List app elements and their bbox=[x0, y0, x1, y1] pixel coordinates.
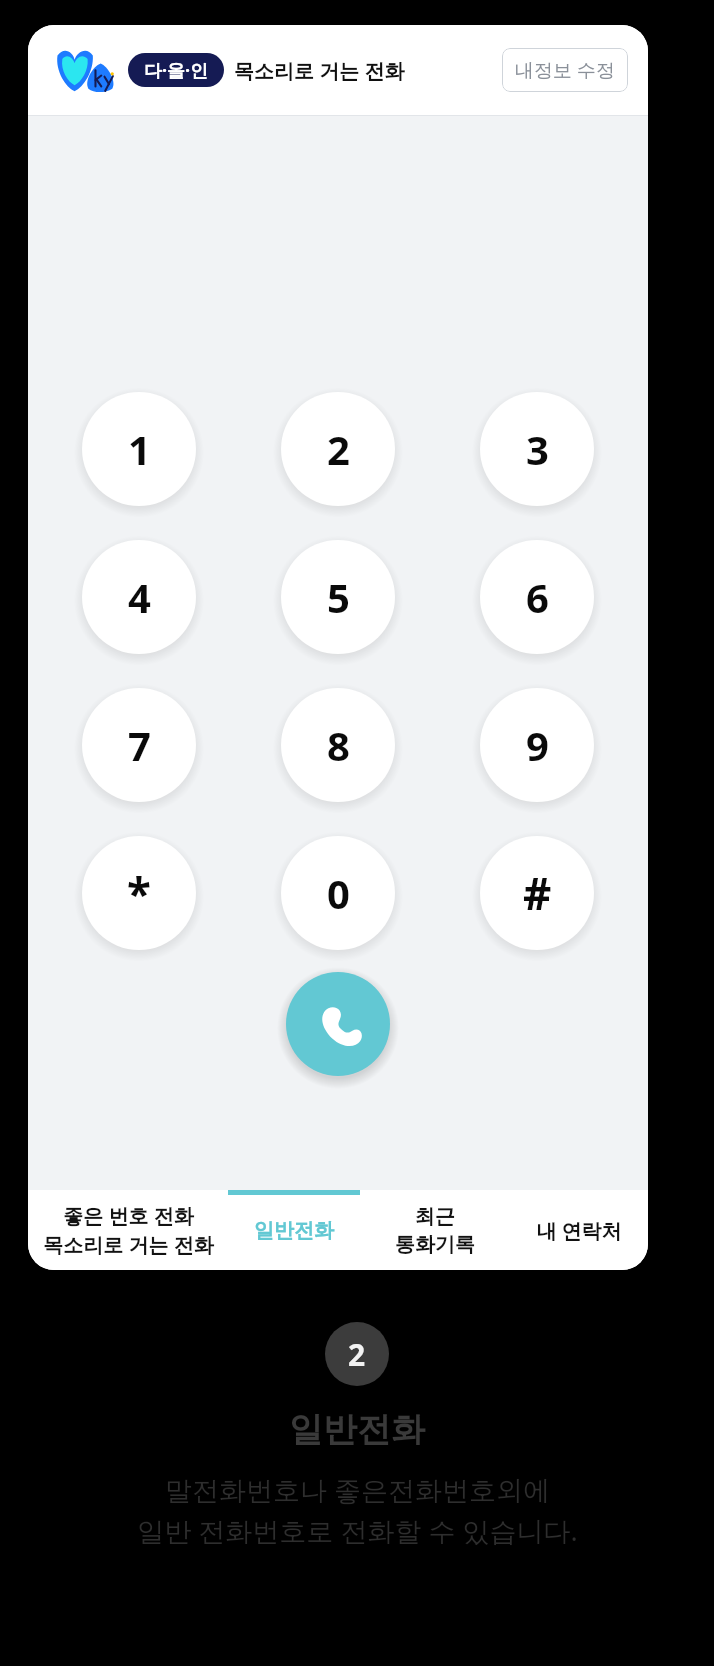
button[interactable]: 내정보 수정 bbox=[502, 48, 628, 92]
staticText: 2 bbox=[348, 1334, 366, 1375]
staticText: 목소리로 거는 전화 bbox=[234, 57, 405, 84]
button[interactable]: 7 bbox=[82, 688, 196, 802]
button[interactable]: 3 bbox=[480, 392, 594, 506]
staticText: 5 bbox=[327, 570, 350, 624]
staticText: 내 연락처 bbox=[536, 1217, 622, 1244]
button[interactable]: 8 bbox=[281, 688, 395, 802]
button[interactable]: 6 bbox=[480, 540, 594, 654]
staticText: 내정보 수정 bbox=[515, 57, 615, 83]
staticText: 9 bbox=[526, 718, 549, 772]
staticText: 좋은 번호 전화 목소리로 거는 전화 bbox=[43, 1202, 214, 1258]
button[interactable]: 4 bbox=[82, 540, 196, 654]
staticText: 0 bbox=[327, 866, 350, 920]
button[interactable]: 일반전화 bbox=[228, 1190, 360, 1270]
button[interactable]: 좋은 번호 전화 목소리로 거는 전화 bbox=[28, 1190, 228, 1270]
button[interactable]: 9 bbox=[480, 688, 594, 802]
staticText: 4 bbox=[128, 570, 151, 624]
staticText: 1 bbox=[128, 422, 151, 476]
button[interactable]: 전화 걸기 bbox=[286, 972, 390, 1076]
staticText: 3 bbox=[526, 422, 549, 476]
button[interactable]: 2 bbox=[281, 392, 395, 506]
staticText: 7 bbox=[128, 718, 151, 772]
button[interactable]: # bbox=[480, 836, 594, 950]
staticText: # bbox=[523, 863, 552, 923]
staticText: * bbox=[127, 863, 151, 923]
staticText: 일반전화 bbox=[289, 1408, 425, 1451]
button[interactable]: 1 bbox=[82, 392, 196, 506]
staticText: 6 bbox=[526, 570, 549, 624]
staticText: 말전화번호나 좋은전화번호외에 일반 전화번호로 전화할 수 있습니다. bbox=[137, 1471, 578, 1549]
button[interactable]: 최근 통화기록 bbox=[360, 1190, 510, 1270]
button[interactable]: 0 bbox=[281, 836, 395, 950]
button[interactable]: 5 bbox=[281, 540, 395, 654]
button[interactable]: 내 연락처 bbox=[510, 1190, 648, 1270]
staticText: 8 bbox=[327, 718, 350, 772]
staticText: 일반전화 bbox=[254, 1218, 334, 1243]
staticText: 2 bbox=[327, 422, 350, 476]
button[interactable]: * bbox=[82, 836, 196, 950]
staticText: 최근 통화기록 bbox=[395, 1204, 475, 1257]
staticText: 다·올·인 bbox=[144, 58, 209, 83]
